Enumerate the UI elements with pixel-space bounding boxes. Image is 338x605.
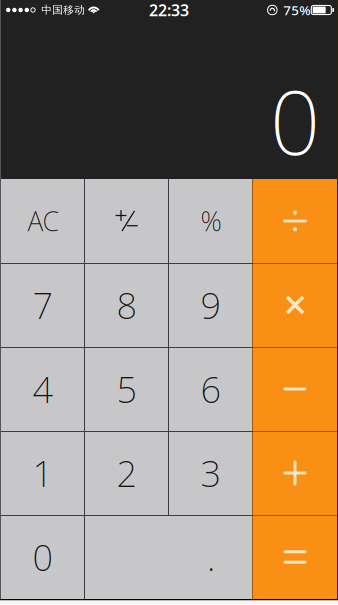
staticText: 8	[116, 281, 137, 329]
staticText: .	[207, 533, 215, 581]
button[interactable]: 2	[85, 431, 169, 515]
button[interactable]: 4	[1, 347, 85, 431]
button[interactable]: Multiply	[253, 263, 337, 347]
staticText: 0	[32, 533, 53, 581]
button[interactable]: Plus	[253, 431, 337, 515]
staticText: 7	[32, 281, 53, 329]
button[interactable]: Divide	[253, 179, 337, 263]
button[interactable]: .	[169, 515, 253, 599]
staticText: 3	[200, 449, 221, 497]
button[interactable]: 6	[169, 347, 253, 431]
staticText: 6	[200, 365, 221, 413]
button[interactable]: %	[169, 179, 253, 263]
staticText: 22:33	[149, 0, 189, 21]
button[interactable]: 8	[85, 263, 169, 347]
button[interactable]: 5	[85, 347, 169, 431]
staticText: 4	[32, 365, 53, 413]
staticText: 9	[200, 281, 221, 329]
button[interactable]: 9	[169, 263, 253, 347]
button[interactable]: Equals	[253, 515, 337, 599]
staticText: 75%	[283, 1, 310, 19]
button[interactable]: Minus	[253, 347, 337, 431]
staticText: 5	[116, 365, 137, 413]
button[interactable]: 0	[1, 515, 169, 599]
button[interactable]: Plus minus	[85, 179, 169, 263]
staticText: AC	[27, 203, 58, 239]
staticText: 1	[32, 449, 53, 497]
staticText: 2	[116, 449, 137, 497]
button[interactable]: 7	[1, 263, 85, 347]
button[interactable]: 1	[1, 431, 85, 515]
staticText: %	[200, 203, 221, 239]
button[interactable]: AC	[1, 179, 85, 263]
staticText: 中国移动	[41, 3, 85, 16]
button[interactable]: 3	[169, 431, 253, 515]
staticText: 0	[270, 62, 320, 179]
